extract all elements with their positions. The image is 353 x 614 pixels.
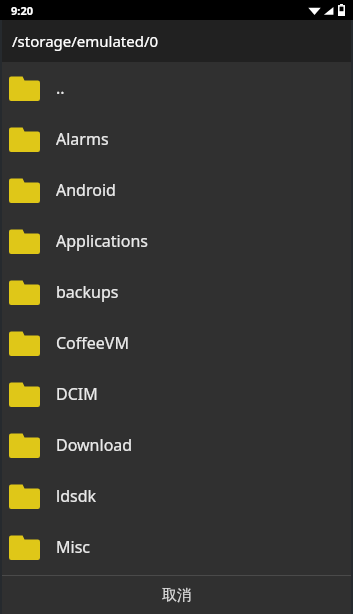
staticText: backups [56, 281, 119, 303]
staticText: Download [56, 434, 133, 456]
staticText: ldsdk [56, 485, 97, 507]
staticText: CoffeeVM [56, 332, 129, 354]
button[interactable]: Applications [0, 215, 353, 266]
button[interactable]: backups [0, 266, 353, 317]
button[interactable]: Android [0, 164, 353, 215]
staticText: Misc [56, 536, 90, 558]
button[interactable]: Alarms [0, 113, 353, 164]
staticText: DCIM [56, 383, 98, 405]
button[interactable]: 取消 [0, 576, 353, 614]
staticText: .. [56, 77, 65, 99]
button[interactable]: ldsdk [0, 470, 353, 521]
staticText: 9:20 [11, 3, 33, 18]
staticText: 取消 [162, 586, 192, 605]
button[interactable]: .. [0, 62, 353, 113]
staticText: /storage/emulated/0 [12, 31, 159, 51]
button[interactable]: CoffeeVM [0, 317, 353, 368]
staticText: Android [56, 179, 116, 201]
button[interactable]: DCIM [0, 368, 353, 419]
button[interactable]: Misc [0, 521, 353, 572]
button[interactable]: Download [0, 419, 353, 470]
staticText: Applications [56, 230, 148, 252]
staticText: Alarms [56, 128, 109, 150]
